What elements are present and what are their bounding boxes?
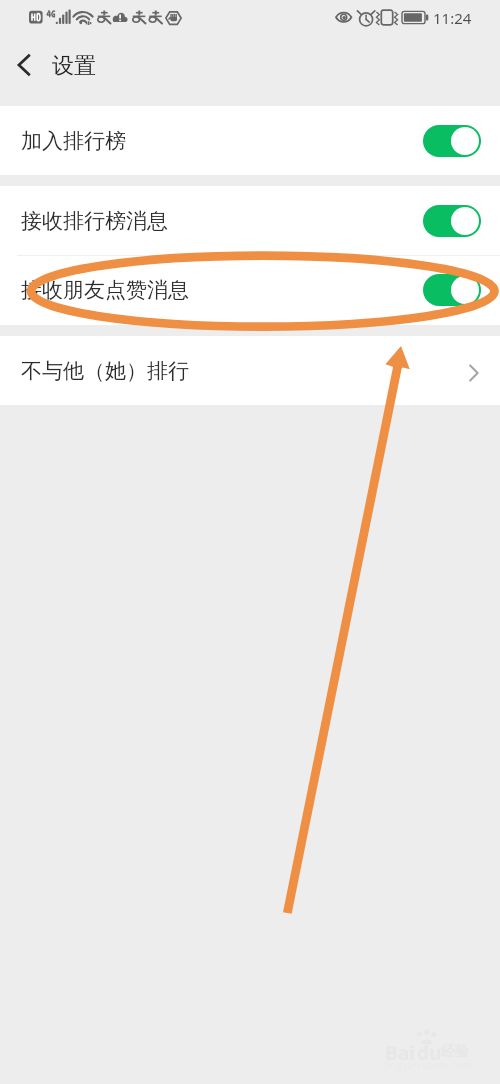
staticText: 接收朋友点赞消息 (21, 277, 189, 303)
staticText: 设置 (52, 52, 96, 80)
button[interactable]: 不与他（她）排行 (0, 336, 500, 405)
button[interactable]: 加入排行榜 开 (423, 125, 481, 157)
button[interactable]: 接收朋友点赞消息 开 (423, 274, 481, 306)
staticText: 加入排行榜 (21, 128, 126, 154)
staticText: 接收排行榜消息 (21, 208, 168, 234)
button[interactable]: 接收排行榜消息 (0, 186, 500, 255)
button[interactable]: 加入排行榜 (0, 106, 500, 175)
button[interactable]: 接收排行榜消息 开 (423, 205, 481, 237)
button[interactable]: Back (0, 36, 48, 92)
button[interactable]: 接收朋友点赞消息 (0, 255, 500, 324)
staticText: 不与他（她）排行 (21, 358, 189, 384)
staticText: 11:24 (433, 8, 472, 28)
